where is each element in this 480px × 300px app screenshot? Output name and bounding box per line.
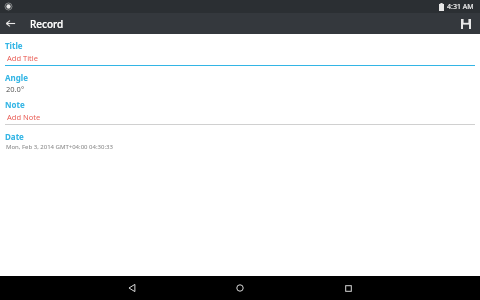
staticText: 4:31 AM xyxy=(447,2,474,12)
staticText: Title xyxy=(5,40,23,51)
button[interactable]: Navigate up xyxy=(0,13,21,34)
staticText: Add Title xyxy=(7,53,38,63)
staticText: Date xyxy=(5,131,24,142)
staticText: Add Note xyxy=(7,112,41,122)
staticText: Note xyxy=(5,99,25,110)
button[interactable]: Home xyxy=(212,276,268,300)
button[interactable]: Save xyxy=(455,13,476,34)
button[interactable]: Back xyxy=(104,276,160,300)
button[interactable]: Recent apps xyxy=(320,276,376,300)
staticText: 20.0° xyxy=(6,84,25,94)
staticText: Mon, Feb 3, 2014 GMT+04:00 04:30:33 xyxy=(6,143,113,151)
button[interactable]: Add Note xyxy=(5,112,475,125)
button[interactable]: Add Title xyxy=(5,53,475,66)
button[interactable]: Mon, Feb 3, 2014 GMT+04:00 04:30:33 xyxy=(5,143,475,151)
staticText: Angle xyxy=(5,72,28,83)
staticText: Record xyxy=(30,17,64,31)
